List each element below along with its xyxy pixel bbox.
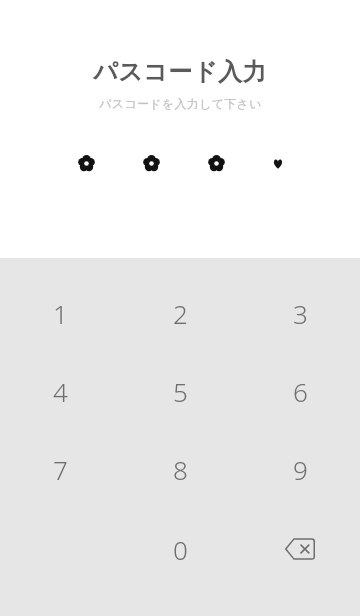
staticText: 6 xyxy=(293,374,308,409)
staticText: 8 xyxy=(173,452,188,487)
staticText: 5 xyxy=(173,374,188,409)
button[interactable]: 9 xyxy=(240,430,360,508)
button[interactable]: Backspace xyxy=(240,508,360,590)
button[interactable]: 1 xyxy=(0,274,120,352)
staticText: 9 xyxy=(293,452,308,487)
button[interactable]: 2 xyxy=(120,274,240,352)
button[interactable]: 8 xyxy=(120,430,240,508)
staticText: 7 xyxy=(53,452,68,487)
staticText: パスコードを入力して下さい xyxy=(99,96,262,111)
button[interactable]: 3 xyxy=(240,274,360,352)
staticText: 3 xyxy=(293,296,308,331)
staticText: 0 xyxy=(173,532,188,567)
staticText: 4 xyxy=(53,374,68,409)
button[interactable]: 6 xyxy=(240,352,360,430)
button[interactable]: 7 xyxy=(0,430,120,508)
staticText: 1 xyxy=(53,296,68,331)
button[interactable]: 5 xyxy=(120,352,240,430)
button[interactable]: 4 xyxy=(0,352,120,430)
staticText: 2 xyxy=(173,296,188,331)
staticText: パスコード入力 xyxy=(93,57,267,87)
button[interactable]: 0 xyxy=(120,508,240,590)
